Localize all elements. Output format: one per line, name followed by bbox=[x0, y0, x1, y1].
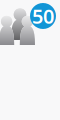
staticText: 50 bbox=[32, 3, 54, 29]
